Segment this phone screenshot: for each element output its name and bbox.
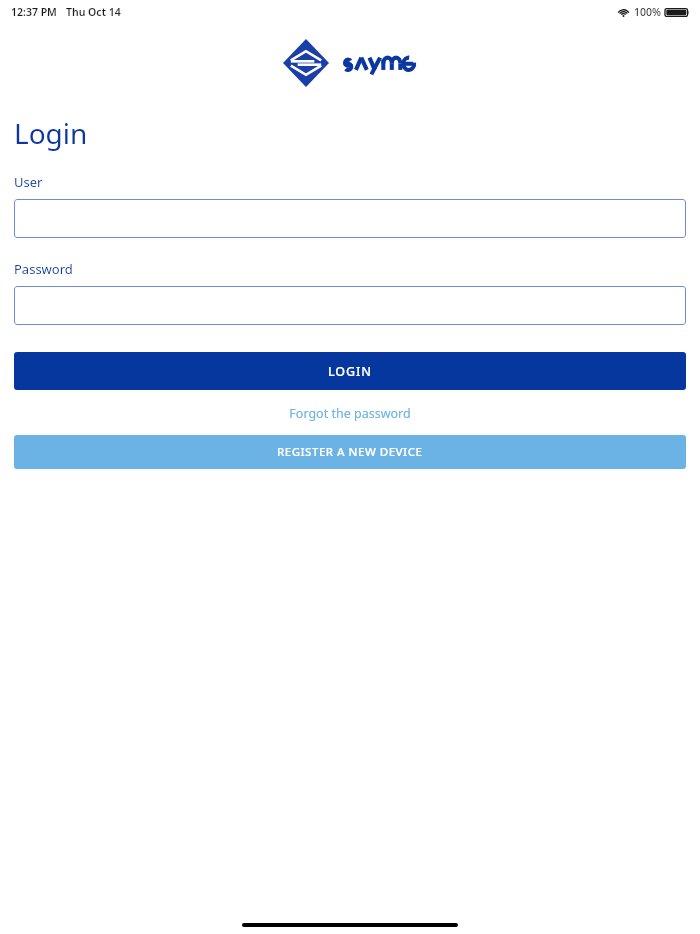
staticText: REGISTER A NEW DEVICE	[277, 444, 423, 460]
staticText: Forgot the password	[289, 405, 411, 422]
staticText: 12:37 PM	[11, 5, 57, 19]
staticText: 100%	[634, 5, 661, 19]
button[interactable]: REGISTER A NEW DEVICE	[14, 435, 686, 469]
staticText: Thu Oct 14	[66, 5, 121, 19]
other: sayme	[343, 51, 417, 73]
staticText: Password	[14, 260, 73, 278]
other: Wi-Fi	[617, 7, 630, 17]
button[interactable]: Forgot the password	[14, 400, 686, 426]
staticText: LOGIN	[328, 363, 372, 380]
button[interactable]: LOGIN	[14, 352, 686, 390]
button[interactable]: User	[14, 199, 686, 238]
button[interactable]: Password	[14, 286, 686, 325]
other: Battery full	[665, 7, 690, 18]
staticText: Login	[14, 114, 88, 152]
staticText: User	[14, 173, 43, 191]
